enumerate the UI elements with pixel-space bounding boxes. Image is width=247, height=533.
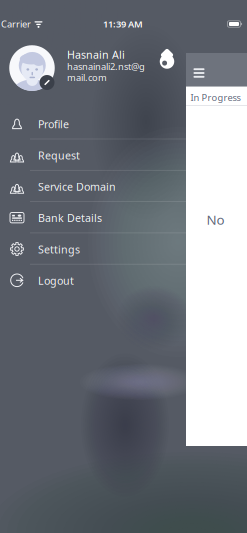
button[interactable]: Open menu bbox=[191, 65, 207, 81]
staticText: mail.com bbox=[67, 71, 107, 84]
staticText: Profile bbox=[38, 117, 69, 131]
staticText: Hasnain Ali bbox=[67, 47, 125, 62]
staticText: No bbox=[206, 211, 224, 228]
button[interactable]: Bank Details bbox=[0, 202, 186, 234]
button[interactable]: Settings bbox=[0, 234, 186, 265]
staticText: Request bbox=[38, 148, 80, 162]
staticText: Service Domain bbox=[38, 180, 116, 194]
button[interactable]: Edit profile photo bbox=[7, 43, 57, 93]
staticText: Carrier bbox=[1, 18, 31, 30]
button[interactable]: Logout bbox=[0, 265, 186, 296]
button[interactable]: Profile bbox=[0, 108, 186, 140]
staticText: Bank Details bbox=[38, 211, 102, 225]
staticText: Settings bbox=[38, 242, 80, 256]
staticText: hasnainali2.nst@g bbox=[67, 60, 145, 73]
button[interactable]: Service Domain bbox=[0, 171, 186, 202]
staticText: 11:39 AM bbox=[103, 18, 143, 30]
button[interactable]: Request bbox=[0, 140, 186, 171]
staticText: In Progress bbox=[190, 91, 240, 104]
staticText: Logout bbox=[38, 273, 74, 288]
